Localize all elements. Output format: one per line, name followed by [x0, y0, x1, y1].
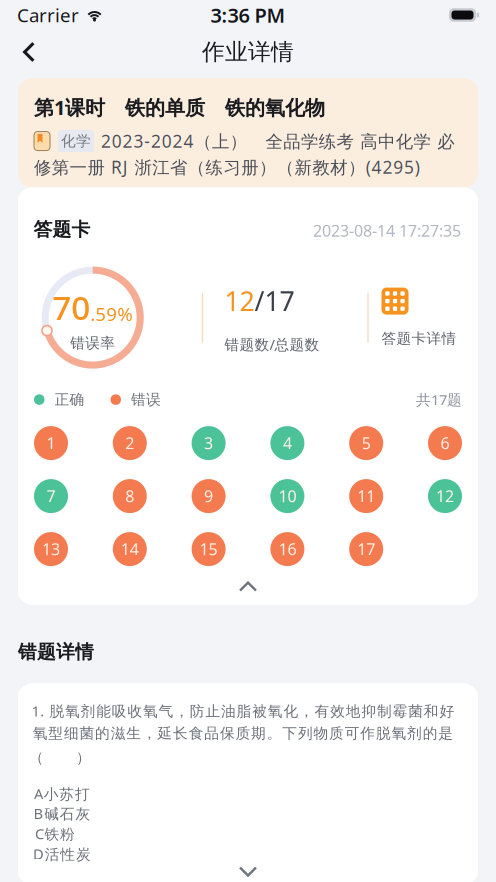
- staticText: （ ）: [29, 749, 91, 767]
- button[interactable]: 13: [34, 532, 68, 566]
- staticText: 4: [283, 432, 292, 454]
- staticText: 正确: [54, 391, 84, 409]
- button[interactable]: 1: [34, 426, 68, 460]
- staticText: 11: [357, 485, 375, 507]
- button[interactable]: 14: [113, 532, 147, 566]
- staticText: 10: [278, 485, 296, 507]
- staticText: 错误率: [70, 334, 115, 352]
- button[interactable]: 9: [192, 479, 226, 513]
- staticText: 15: [200, 538, 218, 560]
- staticText: 2023-2024（上） 全品学练考 高中化学 必: [101, 130, 454, 153]
- button[interactable]: Collapse: [18, 569, 478, 605]
- staticText: C铁粉: [35, 824, 75, 843]
- staticText: A小苏打: [34, 784, 90, 803]
- staticText: 错题数/总题数: [224, 335, 319, 354]
- staticText: 氧型细菌的滋生，延长食品保质期。下列物质可作脱氧剂的是: [33, 724, 453, 742]
- button[interactable]: 10: [270, 479, 304, 513]
- staticText: 化学: [61, 132, 91, 150]
- staticText: 7: [46, 485, 55, 507]
- staticText: 17: [357, 538, 375, 560]
- button[interactable]: 6: [428, 426, 462, 460]
- staticText: 8: [125, 485, 134, 507]
- button[interactable]: Expand: [18, 854, 478, 882]
- button[interactable]: Back: [7, 30, 51, 74]
- staticText: 6: [440, 432, 449, 454]
- button[interactable]: 答题卡详情: [381, 288, 456, 348]
- staticText: 9: [204, 485, 213, 507]
- button[interactable]: 11: [349, 479, 383, 513]
- button[interactable]: 12: [428, 479, 462, 513]
- staticText: 错误: [131, 391, 161, 409]
- staticText: 2023-08-14 17:27:35: [313, 220, 461, 241]
- staticText: 16: [278, 538, 296, 560]
- staticText: B碱石灰: [34, 803, 90, 823]
- staticText: 1. 脱氧剂能吸收氧气，防止油脂被氧化，有效地抑制霉菌和好: [32, 701, 454, 720]
- staticText: 12: [224, 283, 254, 318]
- staticText: 答题卡: [33, 218, 90, 241]
- button[interactable]: 4: [270, 426, 304, 460]
- staticText: 作业详情: [202, 38, 294, 66]
- staticText: 答题卡详情: [381, 330, 456, 348]
- staticText: 错题详情: [18, 641, 94, 663]
- staticText: 14: [121, 538, 139, 560]
- staticText: 2: [125, 432, 134, 454]
- button[interactable]: 16: [270, 532, 304, 566]
- staticText: .59%: [90, 301, 133, 326]
- button[interactable]: 8: [113, 479, 147, 513]
- button[interactable]: 3: [192, 426, 226, 460]
- button[interactable]: 7: [34, 479, 68, 513]
- staticText: 1: [46, 432, 55, 454]
- staticText: 5: [362, 432, 371, 454]
- staticText: 共17题: [416, 390, 462, 409]
- button[interactable]: 2: [113, 426, 147, 460]
- button[interactable]: 17: [349, 532, 383, 566]
- staticText: 修第一册 RJ 浙江省（练习册）（新教材）(4295): [34, 156, 420, 179]
- button[interactable]: 5: [349, 426, 383, 460]
- staticText: 3:36 PM: [210, 2, 285, 28]
- staticText: 13: [42, 538, 60, 560]
- staticText: 第1课时 铁的单质 铁的氧化物: [34, 94, 325, 121]
- staticText: 3: [204, 432, 213, 454]
- staticText: D活性炭: [33, 844, 91, 863]
- staticText: /17: [254, 283, 294, 318]
- staticText: 12: [436, 485, 454, 507]
- button[interactable]: 15: [192, 532, 226, 566]
- staticText: 70: [52, 285, 90, 329]
- staticText: Carrier: [17, 3, 79, 27]
